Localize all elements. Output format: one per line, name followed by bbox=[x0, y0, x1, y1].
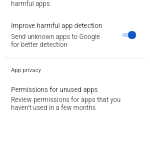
staticText: Permissions for unused apps bbox=[11, 86, 98, 94]
staticText: Send unknown apps to Google for better d… bbox=[11, 33, 109, 49]
staticText: harmful apps bbox=[11, 0, 50, 8]
staticText: App privacy bbox=[11, 67, 42, 74]
staticText: Improve harmful app detection bbox=[11, 22, 103, 30]
staticText: Review permissions for apps that you hav… bbox=[11, 96, 124, 112]
button[interactable]: Toggle improve harmful app detection bbox=[119, 27, 139, 42]
button[interactable]: Improve harmful app detection bbox=[0, 19, 150, 53]
button[interactable]: Permissions for unused apps bbox=[0, 84, 150, 114]
